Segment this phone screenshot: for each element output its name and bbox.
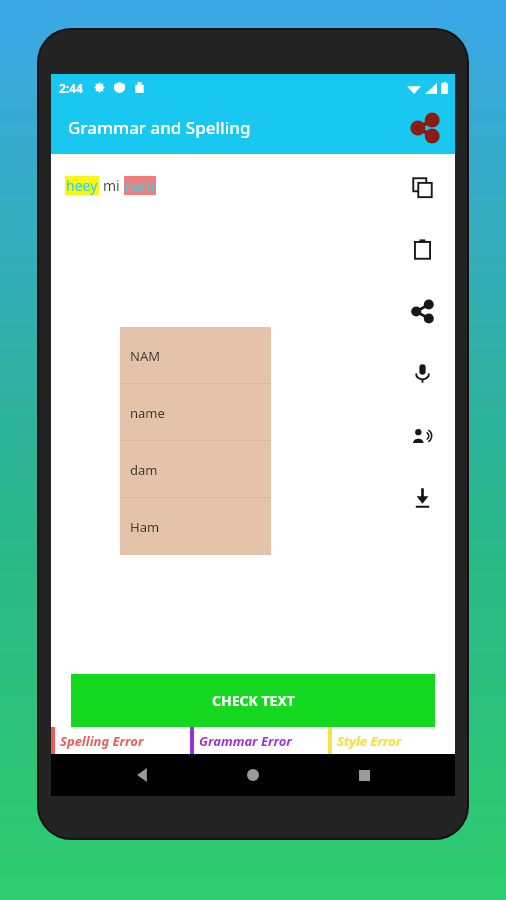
staticText: Ham xyxy=(130,518,160,536)
button[interactable]: CHECK TEXT xyxy=(71,674,435,727)
staticText: Grammar Error xyxy=(199,732,292,750)
staticText: mi xyxy=(103,176,120,195)
button[interactable]: dam xyxy=(120,441,271,498)
staticText: Spelling Error xyxy=(60,732,144,750)
staticText: heey xyxy=(66,176,98,195)
button[interactable]: Recent apps xyxy=(344,755,384,795)
button[interactable]: Back xyxy=(122,755,162,795)
button[interactable]: Share xyxy=(401,290,443,332)
button[interactable]: Ham xyxy=(120,498,271,555)
staticText: Style Error xyxy=(337,732,402,750)
staticText: NAM xyxy=(130,347,160,365)
button[interactable]: Speak text xyxy=(401,414,443,456)
button[interactable]: name xyxy=(120,384,271,441)
staticText: Grammar and Spelling xyxy=(68,116,251,139)
button[interactable]: Share xyxy=(405,108,445,148)
button[interactable]: Home xyxy=(233,755,273,795)
button[interactable]: Grammar Error xyxy=(190,727,328,754)
staticText: 2:44 xyxy=(59,80,83,96)
button[interactable]: Spelling Error xyxy=(51,727,190,754)
button[interactable]: Style Error xyxy=(328,727,455,754)
staticText: name xyxy=(130,404,165,422)
button[interactable]: Voice input xyxy=(401,352,443,394)
button[interactable]: Paste xyxy=(401,228,443,270)
button[interactable]: Copy xyxy=(401,166,443,208)
staticText: CHECK TEXT xyxy=(212,691,295,710)
button[interactable]: NAM xyxy=(120,327,271,384)
staticText: dam xyxy=(130,461,158,479)
button[interactable]: Download xyxy=(401,476,443,518)
staticText: nam xyxy=(125,176,155,195)
